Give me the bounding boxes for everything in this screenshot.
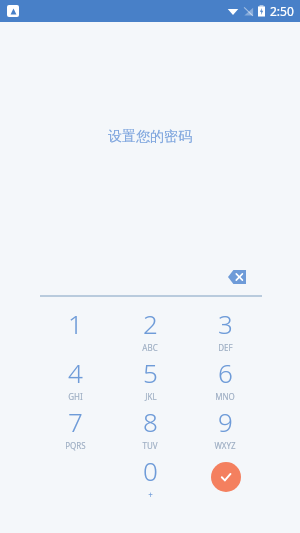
staticText: 2 [143,306,158,341]
staticText: DEF [218,342,233,353]
button[interactable]: Backspace [222,264,252,290]
staticText: JKL [145,391,157,402]
button[interactable]: 0 [115,453,185,501]
staticText: 3 [218,306,233,341]
staticText: 5 [143,355,158,390]
button[interactable]: 9 [190,404,260,452]
button[interactable]: 4 [40,355,110,403]
staticText: WXYZ [214,440,236,451]
staticText: 0 [143,453,158,488]
button[interactable]: 3 [190,306,260,354]
button[interactable]: 8 [115,404,185,452]
button[interactable]: 5 [115,355,185,403]
staticText: 2:50 [270,3,294,19]
staticText: ABC [142,342,158,353]
staticText: 设置您的密码 [0,128,300,146]
button[interactable]: 6 [190,355,260,403]
staticText: GHI [68,391,83,402]
button[interactable]: Confirm [204,455,248,499]
button[interactable]: 1 [40,306,110,354]
staticText: 6 [218,355,233,390]
staticText: + [148,489,153,500]
staticText: 8 [143,404,158,439]
staticText: PQRS [65,440,86,451]
button[interactable]: 2 [115,306,185,354]
staticText: TUV [142,440,158,451]
staticText: MNO [215,391,235,402]
staticText: 9 [218,404,233,439]
staticText: 4 [68,355,83,390]
staticText: 7 [68,404,83,439]
button[interactable]: 7 [40,404,110,452]
staticText: 1 [68,306,83,341]
